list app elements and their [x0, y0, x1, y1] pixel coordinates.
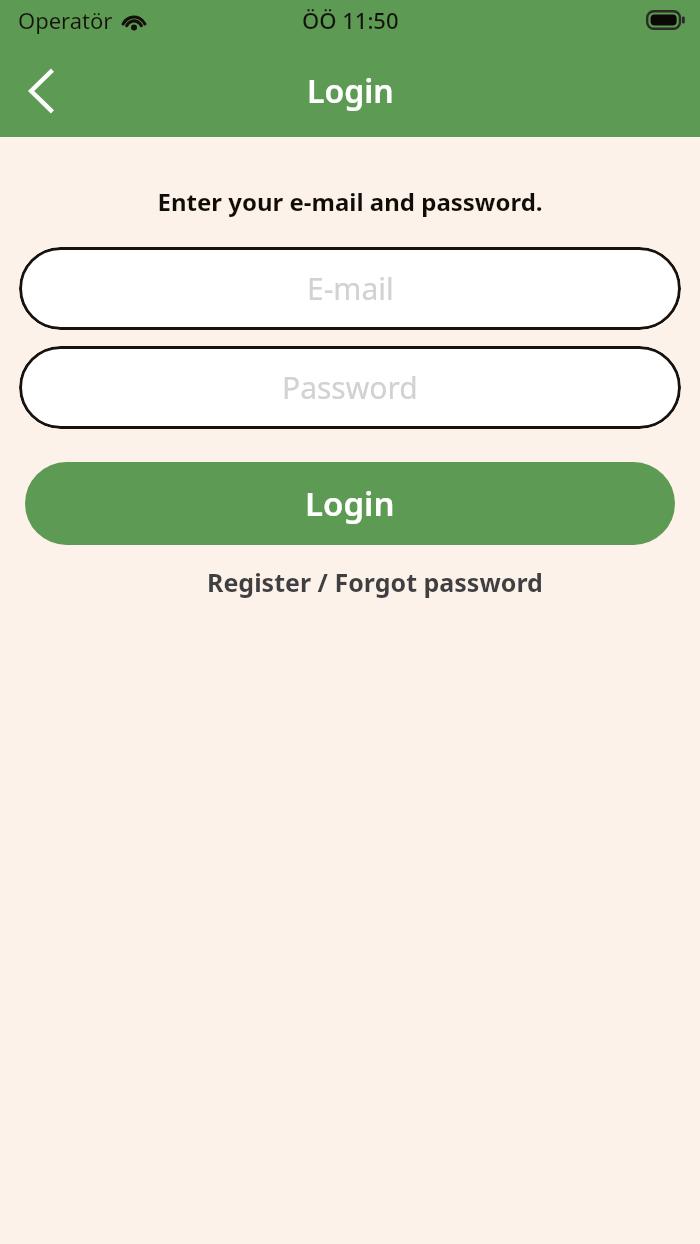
- staticText: Login: [307, 69, 394, 113]
- staticText: Password: [282, 367, 418, 408]
- staticText: Login: [305, 481, 395, 526]
- staticText: Operatör: [18, 5, 113, 35]
- button[interactable]: E-mail: [19, 247, 681, 330]
- button[interactable]: Password: [19, 346, 681, 429]
- button[interactable]: Login: [25, 462, 675, 545]
- button[interactable]: Back: [8, 58, 74, 124]
- staticText: E-mail: [307, 268, 394, 309]
- staticText: ÖÖ 11:50: [302, 5, 399, 35]
- button[interactable]: Register / Forgot password: [201, 561, 549, 603]
- staticText: Enter your e-mail and password.: [0, 185, 700, 218]
- staticText: Register / Forgot password: [207, 565, 543, 599]
